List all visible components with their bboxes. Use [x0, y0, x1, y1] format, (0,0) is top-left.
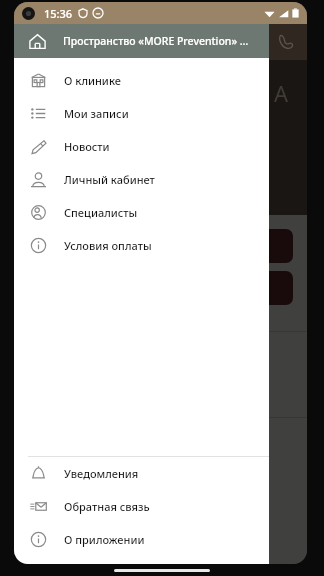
button[interactable]: Пространство «MORE Prevention» Кра…: [14, 24, 269, 58]
button[interactable]: Условия оплаты: [14, 229, 269, 262]
staticText: Пространство «MORE Prevention» Кра…: [63, 34, 255, 48]
button[interactable]: Специалисты: [14, 196, 269, 229]
staticText: Мои записи: [64, 106, 129, 121]
staticText: О приложении: [64, 532, 145, 547]
staticText: О клинике: [64, 73, 121, 88]
button[interactable]: [54, 271, 293, 305]
button[interactable]: Обратная связь: [14, 490, 269, 523]
button[interactable]: Новости: [14, 130, 269, 163]
button[interactable]: Мои записи: [14, 97, 269, 130]
button[interactable]: Личный кабинет: [14, 163, 269, 196]
staticText: Уведомления: [64, 466, 139, 481]
button[interactable]: О приложении: [14, 523, 269, 556]
button[interactable]: О клинике: [14, 64, 269, 97]
staticText: A: [274, 78, 289, 108]
button[interactable]: Call: [273, 29, 299, 55]
staticText: Условия оплаты: [64, 238, 152, 253]
staticText: Личный кабинет: [64, 172, 155, 187]
staticText: Обратная связь: [64, 499, 150, 514]
button[interactable]: [54, 229, 293, 263]
staticText: Специалисты: [64, 205, 138, 220]
button[interactable]: Уведомления: [14, 457, 269, 490]
staticText: Новости: [64, 139, 110, 154]
staticText: 15:36: [44, 6, 73, 21]
